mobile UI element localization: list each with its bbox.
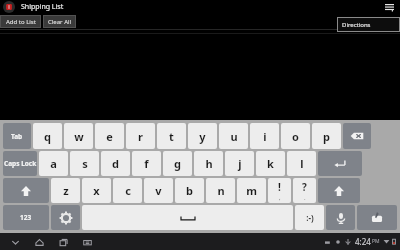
staticText: c	[125, 183, 131, 198]
staticText: g	[174, 156, 181, 171]
button[interactable]: c	[113, 178, 142, 203]
staticText: f	[144, 156, 149, 171]
staticText: w	[74, 129, 84, 144]
button[interactable]: a	[39, 151, 68, 176]
button[interactable]: u	[219, 123, 248, 149]
staticText: m	[246, 183, 257, 198]
button[interactable]: More options	[381, 0, 397, 14]
staticText: r	[138, 129, 143, 144]
button[interactable]: p	[312, 123, 341, 149]
button[interactable]: Hide keyboard	[8, 235, 22, 249]
staticText: a	[50, 156, 57, 171]
staticText: y	[199, 129, 206, 144]
staticText: v	[155, 183, 162, 198]
staticText: n	[217, 183, 225, 198]
staticText: t	[169, 129, 174, 144]
button[interactable]: w	[64, 123, 93, 149]
button[interactable]: Caps Lock	[3, 151, 37, 176]
staticText: z	[63, 183, 69, 198]
staticText: :-)	[306, 212, 314, 223]
staticText: ?	[302, 180, 307, 194]
button[interactable]: App icon, up	[3, 1, 15, 13]
button[interactable]: e	[95, 123, 124, 149]
staticText: b	[186, 183, 193, 198]
button[interactable]: Handwriting	[357, 205, 397, 230]
button[interactable]: k	[256, 151, 285, 176]
button[interactable]: Add to List	[0, 15, 41, 28]
staticText: ,	[279, 194, 281, 202]
button[interactable]: d	[101, 151, 130, 176]
staticText: s	[82, 156, 88, 171]
staticText: Clear All	[48, 18, 72, 26]
staticText: 123	[20, 213, 32, 222]
staticText: Tab	[11, 132, 23, 141]
button[interactable]: q	[33, 123, 62, 149]
button[interactable]: Switch keyboard	[80, 235, 94, 249]
staticText: d	[112, 156, 119, 171]
staticText: i	[263, 129, 267, 144]
staticText: h	[205, 156, 213, 171]
staticText: Add to List	[6, 18, 36, 26]
button[interactable]: :-)	[295, 205, 324, 230]
staticText: o	[292, 129, 299, 144]
staticText: 4:24	[355, 236, 371, 247]
staticText: q	[44, 129, 51, 144]
button[interactable]: b	[175, 178, 204, 203]
staticText: !	[278, 180, 281, 194]
button[interactable]: !	[268, 178, 291, 203]
staticText: x	[93, 183, 100, 198]
staticText: u	[230, 129, 238, 144]
staticText: p	[323, 129, 330, 144]
button[interactable]: o	[281, 123, 310, 149]
button[interactable]: Input settings	[51, 205, 80, 230]
staticText: e	[106, 129, 113, 144]
staticText: j	[238, 156, 242, 171]
button[interactable]: h	[194, 151, 223, 176]
button[interactable]: Space	[82, 205, 293, 230]
button[interactable]: v	[144, 178, 173, 203]
button[interactable]: x	[82, 178, 111, 203]
staticText: .	[304, 194, 306, 202]
button[interactable]: Backspace	[343, 123, 371, 149]
staticText: l	[300, 156, 304, 171]
button[interactable]: y	[188, 123, 217, 149]
button[interactable]: Shift	[3, 178, 49, 203]
button[interactable]: Clear All	[43, 15, 76, 28]
button[interactable]: Directions	[337, 17, 400, 32]
button[interactable]: Voice input	[326, 205, 355, 230]
staticText: Caps Lock	[4, 159, 37, 168]
button[interactable]: s	[70, 151, 99, 176]
button[interactable]: Tab	[3, 123, 31, 149]
button[interactable]: j	[225, 151, 254, 176]
button[interactable]: g	[163, 151, 192, 176]
staticText: PM	[372, 238, 380, 245]
button[interactable]: z	[51, 178, 80, 203]
button[interactable]: i	[250, 123, 279, 149]
button[interactable]: ?	[293, 178, 316, 203]
staticText: Directions	[342, 21, 371, 29]
button[interactable]: Shift	[318, 178, 360, 203]
button[interactable]: t	[157, 123, 186, 149]
button[interactable]: f	[132, 151, 161, 176]
button[interactable]: Home	[32, 235, 46, 249]
staticText: Shipping List	[21, 2, 64, 12]
button[interactable]: n	[206, 178, 235, 203]
staticText: k	[267, 156, 274, 171]
button[interactable]: r	[126, 123, 155, 149]
button[interactable]: 123	[3, 205, 49, 230]
button[interactable]: l	[287, 151, 316, 176]
button[interactable]: m	[237, 178, 266, 203]
button[interactable]: Enter	[318, 151, 362, 176]
button[interactable]: Recent apps	[56, 235, 70, 249]
